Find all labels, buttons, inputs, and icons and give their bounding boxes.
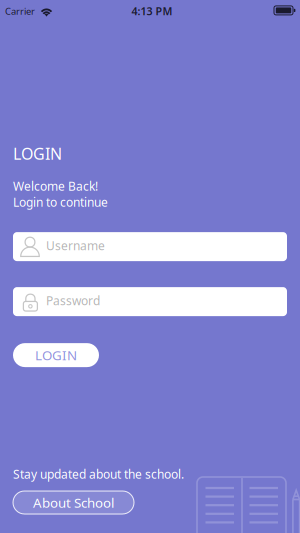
- staticText: Login to continue: [13, 194, 108, 210]
- staticText: LOGIN: [13, 143, 62, 164]
- staticText: LOGIN: [35, 346, 77, 364]
- button[interactable]: LOGIN: [13, 343, 99, 367]
- staticText: Username: [46, 238, 105, 254]
- button[interactable]: Username: [13, 232, 287, 261]
- button[interactable]: Password: [13, 287, 287, 316]
- staticText: About School: [33, 494, 114, 511]
- staticText: Carrier: [5, 5, 35, 17]
- staticText: Stay updated about the school.: [13, 466, 184, 482]
- staticText: Password: [46, 293, 100, 309]
- staticText: 4:13 PM: [131, 4, 172, 18]
- staticText: Welcome Back!: [13, 178, 98, 194]
- button[interactable]: About School: [13, 491, 134, 514]
